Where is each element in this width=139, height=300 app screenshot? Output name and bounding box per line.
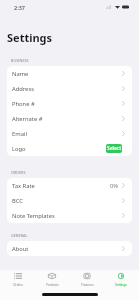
staticText: Logo xyxy=(12,145,26,153)
staticText: Tax Rate xyxy=(12,182,35,190)
button[interactable]: Select xyxy=(106,144,122,153)
staticText: BUSINESS xyxy=(11,58,29,63)
staticText: Note Templates xyxy=(12,212,55,220)
button[interactable]: Settings xyxy=(104,273,138,287)
button[interactable]: Finances xyxy=(70,273,104,287)
button[interactable]: BCC xyxy=(7,193,132,208)
button[interactable]: Note Templates xyxy=(7,208,132,223)
button[interactable]: Name xyxy=(7,66,132,81)
button[interactable]: Address xyxy=(7,81,132,96)
button[interactable]: Orders xyxy=(1,273,35,287)
staticText: Phone # xyxy=(12,100,35,108)
staticText: Name xyxy=(12,70,29,78)
staticText: GENERAL xyxy=(11,233,28,238)
staticText: Products xyxy=(46,283,59,287)
button[interactable]: Phone # xyxy=(7,96,132,111)
staticText: Email xyxy=(12,130,27,138)
staticText: Settings xyxy=(7,30,53,45)
button[interactable]: About xyxy=(7,241,132,256)
staticText: Select xyxy=(107,145,122,152)
staticText: BCC xyxy=(12,197,23,205)
staticText: Address xyxy=(12,85,34,93)
staticText: 0% xyxy=(110,182,119,190)
button[interactable]: Email xyxy=(7,126,132,141)
staticText: Alternate # xyxy=(12,115,43,123)
button[interactable]: Products xyxy=(35,273,69,287)
button[interactable]: Tax Rate xyxy=(7,178,132,193)
button[interactable]: Logo xyxy=(7,141,132,156)
staticText: Orders xyxy=(13,283,23,287)
staticText: About xyxy=(12,245,29,253)
staticText: 2:37 xyxy=(14,4,25,11)
staticText: Finances xyxy=(81,283,94,287)
staticText: Settings xyxy=(115,283,127,287)
staticText: ORDERS xyxy=(11,170,26,175)
button[interactable]: Alternate # xyxy=(7,111,132,126)
